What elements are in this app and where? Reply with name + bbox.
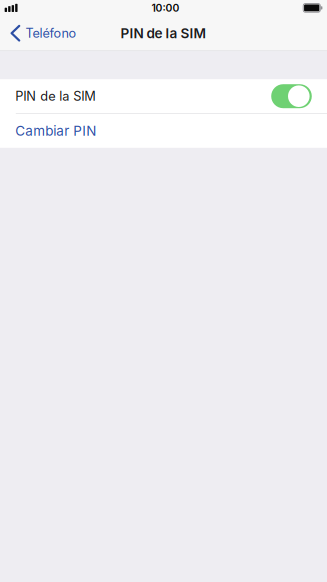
staticText: PIN de la SIM bbox=[120, 25, 206, 41]
button[interactable]: PIN de la SIM bbox=[0, 79, 327, 113]
staticText: Cambiar PIN bbox=[15, 123, 96, 139]
button[interactable]: Cambiar PIN bbox=[0, 114, 327, 148]
staticText: 10:00 bbox=[151, 2, 179, 14]
button[interactable]: Teléfono bbox=[0, 16, 84, 51]
staticText: Teléfono bbox=[25, 25, 76, 41]
staticText: PIN de la SIM bbox=[15, 88, 96, 104]
